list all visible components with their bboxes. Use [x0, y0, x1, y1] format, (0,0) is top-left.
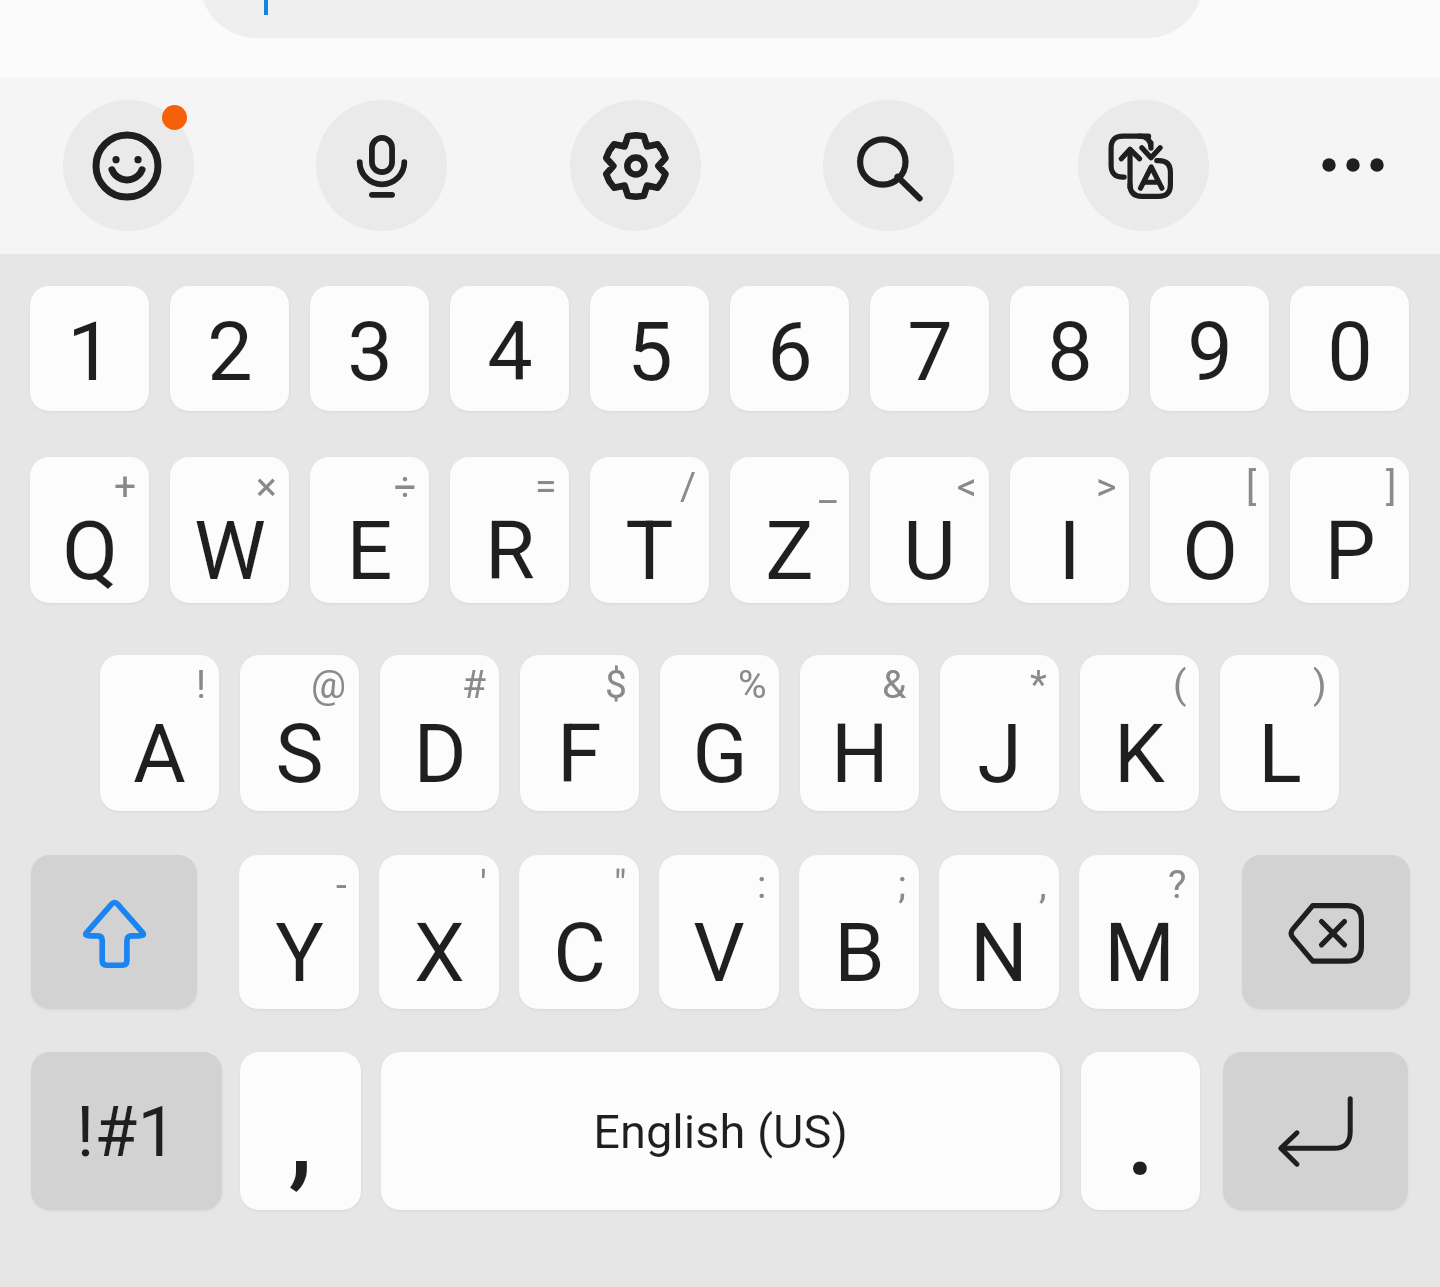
- button[interactable]: H: [800, 655, 919, 811]
- staticText: I: [1058, 504, 1081, 599]
- staticText: ): [1313, 662, 1327, 708]
- staticText: !#1: [76, 1091, 177, 1173]
- button[interactable]: S: [240, 655, 359, 811]
- staticText: 7: [907, 305, 953, 400]
- staticText: _: [819, 464, 837, 510]
- button[interactable]: English (US): [381, 1052, 1060, 1210]
- staticText: >: [1096, 464, 1117, 510]
- button[interactable]: 8: [1010, 286, 1129, 411]
- button[interactable]: .: [1081, 1052, 1200, 1210]
- button[interactable]: Emoji: [63, 100, 194, 231]
- button[interactable]: 3: [310, 286, 429, 411]
- staticText: E: [346, 504, 393, 599]
- button[interactable]: F: [520, 655, 639, 811]
- button[interactable]: J: [940, 655, 1059, 811]
- button[interactable]: Search: [823, 100, 954, 231]
- button[interactable]: 6: [730, 286, 849, 411]
- staticText: ': [480, 862, 487, 908]
- button[interactable]: Z: [730, 457, 849, 603]
- staticText: 8: [1047, 305, 1093, 400]
- button[interactable]: N: [939, 855, 1059, 1009]
- staticText: N: [970, 906, 1028, 1001]
- staticText: ,: [1039, 862, 1047, 908]
- button[interactable]: More options: [1293, 105, 1413, 225]
- button[interactable]: 9: [1150, 286, 1269, 411]
- button[interactable]: T: [590, 457, 709, 603]
- button[interactable]: W: [170, 457, 289, 603]
- button[interactable]: !#1: [31, 1052, 222, 1210]
- staticText: ÷: [394, 464, 417, 510]
- staticText: 4: [487, 305, 533, 400]
- button[interactable]: 5: [590, 286, 709, 411]
- staticText: R: [485, 504, 535, 599]
- button[interactable]: Backspace: [1242, 855, 1410, 1009]
- button[interactable]: M: [1079, 855, 1199, 1009]
- staticText: <: [957, 464, 977, 510]
- button[interactable]: Settings: [570, 100, 701, 231]
- staticText: =: [535, 464, 557, 510]
- staticText: C: [553, 906, 606, 1001]
- button[interactable]: Q: [30, 457, 149, 603]
- button[interactable]: L: [1220, 655, 1339, 811]
- button[interactable]: Enter: [1223, 1052, 1408, 1210]
- staticText: J: [977, 707, 1022, 802]
- staticText: K: [1114, 707, 1165, 802]
- staticText: ": [614, 862, 627, 908]
- staticText: &: [882, 662, 907, 708]
- staticText: ×: [256, 464, 277, 510]
- button[interactable]: X: [379, 855, 499, 1009]
- staticText: D: [413, 707, 467, 802]
- button[interactable]: O: [1150, 457, 1269, 603]
- button[interactable]: Voice input: [316, 100, 447, 231]
- staticText: %: [738, 662, 767, 708]
- staticText: B: [834, 906, 885, 1001]
- staticText: M: [1104, 906, 1175, 1001]
- staticText: 0: [1327, 305, 1373, 400]
- button[interactable]: 2: [170, 286, 289, 411]
- button[interactable]: U: [870, 457, 989, 603]
- staticText: T: [625, 504, 674, 599]
- staticText: 9: [1187, 305, 1233, 400]
- button[interactable]: V: [659, 855, 779, 1009]
- button[interactable]: A: [100, 655, 219, 811]
- staticText: Q: [62, 504, 118, 599]
- button[interactable]: Text input field: [200, 0, 1203, 38]
- staticText: ?: [1168, 862, 1187, 908]
- button[interactable]: R: [450, 457, 569, 603]
- staticText: [: [1246, 464, 1257, 510]
- staticText: .: [1124, 1059, 1157, 1204]
- button[interactable]: G: [660, 655, 779, 811]
- staticText: 6: [767, 305, 813, 400]
- staticText: !: [196, 662, 207, 708]
- staticText: S: [275, 707, 324, 802]
- staticText: U: [903, 504, 956, 599]
- staticText: *: [1030, 662, 1047, 708]
- button[interactable]: C: [519, 855, 639, 1009]
- button[interactable]: Shift: [31, 855, 197, 1009]
- button[interactable]: P: [1290, 457, 1409, 603]
- button[interactable]: Y: [239, 855, 359, 1009]
- button[interactable]: 4: [450, 286, 569, 411]
- staticText: (: [1173, 662, 1187, 708]
- staticText: F: [557, 707, 602, 802]
- staticText: +: [114, 464, 137, 510]
- button[interactable]: ,: [240, 1052, 361, 1210]
- staticText: :: [757, 862, 767, 908]
- staticText: G: [692, 707, 748, 802]
- button[interactable]: 0: [1290, 286, 1409, 411]
- staticText: 3: [347, 305, 393, 400]
- button[interactable]: K: [1080, 655, 1199, 811]
- staticText: 5: [627, 305, 673, 400]
- button[interactable]: Translate: [1078, 100, 1209, 231]
- button[interactable]: E: [310, 457, 429, 603]
- button[interactable]: 1: [30, 286, 149, 411]
- staticText: @: [311, 662, 347, 708]
- staticText: ,: [288, 1059, 313, 1204]
- staticText: ]: [1386, 464, 1397, 510]
- staticText: Y: [275, 906, 324, 1001]
- button[interactable]: I: [1010, 457, 1129, 603]
- button[interactable]: B: [799, 855, 919, 1009]
- button[interactable]: 7: [870, 286, 989, 411]
- staticText: W: [194, 504, 266, 599]
- button[interactable]: D: [380, 655, 499, 811]
